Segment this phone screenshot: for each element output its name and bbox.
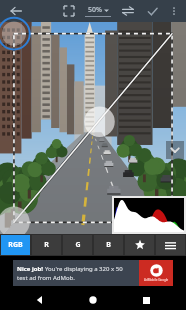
staticText: B [106, 240, 111, 250]
button[interactable]: Collapse [166, 141, 184, 159]
button[interactable]: Apply [140, 0, 164, 22]
staticText: RGB [8, 240, 23, 250]
staticText: AdMobile Google [144, 278, 169, 282]
button[interactable]: R [32, 235, 61, 255]
staticText: R [44, 240, 49, 250]
button[interactable]: Recent apps [133, 290, 159, 310]
button[interactable]: Menu [156, 235, 185, 255]
button[interactable]: Home [80, 290, 106, 310]
button[interactable]: Histogram [114, 198, 184, 232]
button[interactable]: Nice job! [13, 260, 173, 286]
button[interactable]: Presets [125, 235, 154, 255]
button[interactable]: RGB [1, 235, 30, 255]
button[interactable]: Fit to screen [57, 0, 81, 22]
button[interactable]: Compare [116, 0, 140, 22]
button[interactable]: Back [27, 290, 53, 310]
staticText: test ad from AdMob. [17, 274, 75, 282]
staticText: 50% [88, 5, 102, 15]
staticText: G [75, 240, 81, 250]
staticText: You're displaying a 320 x 50 [45, 265, 123, 273]
staticText: Nice job! [17, 265, 43, 273]
button[interactable]: More options [164, 1, 184, 21]
button[interactable]: B [94, 235, 123, 255]
button[interactable]: G [63, 235, 92, 255]
button[interactable]: 50% [83, 5, 113, 17]
button[interactable]: Back [5, 0, 27, 22]
